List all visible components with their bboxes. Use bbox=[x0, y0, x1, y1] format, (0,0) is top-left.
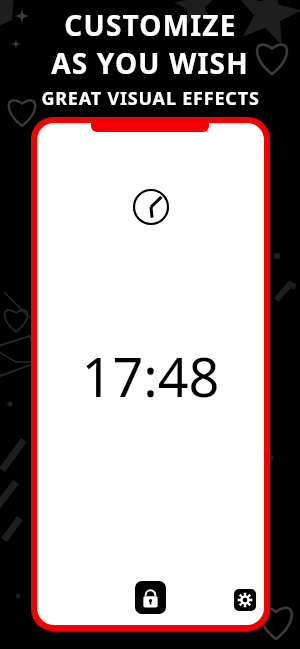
button[interactable]: Settings bbox=[234, 589, 256, 611]
button[interactable]: Lock screen bbox=[135, 581, 166, 614]
staticText: GREAT VISUAL EFFECTS bbox=[41, 86, 260, 111]
button[interactable]: Clock face style bbox=[132, 188, 170, 226]
staticText: CUSTOMIZE bbox=[64, 6, 237, 44]
staticText: AS YOU WISH bbox=[51, 44, 249, 82]
staticText: 17:48 bbox=[81, 339, 220, 409]
